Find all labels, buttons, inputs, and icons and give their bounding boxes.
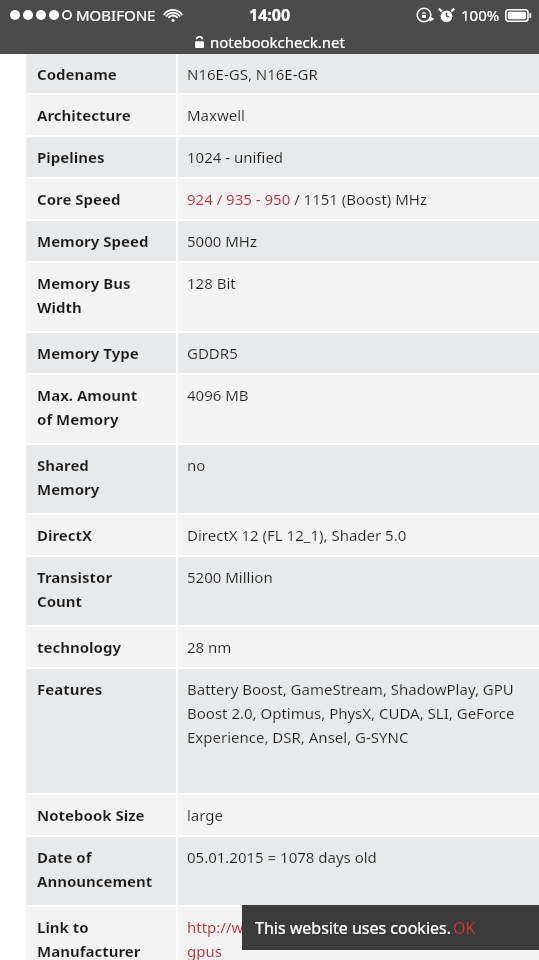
staticText: Maxwell — [187, 105, 245, 125]
staticText: Date of Announcement — [37, 847, 153, 891]
staticText: Memory Speed — [37, 231, 149, 251]
staticText: technology — [37, 637, 121, 657]
staticText: notebookcheck.net — [210, 32, 345, 52]
staticText: 5000 MHz — [187, 231, 257, 251]
staticText: no — [187, 455, 206, 475]
staticText: DirectX 12 (FL 12_1), Shader 5.0 — [187, 525, 407, 545]
staticText: N16E-GS, N16E-GR — [187, 64, 318, 84]
staticText: Architecture — [37, 105, 131, 125]
button[interactable]: Memory Speed — [26, 221, 539, 261]
staticText: Max. Amount of Memory — [37, 385, 138, 429]
staticText: MOBIFONE — [76, 5, 156, 25]
staticText: DirectX — [37, 525, 93, 545]
button[interactable]: Pipelines — [26, 137, 539, 177]
staticText: Transistor Count — [37, 567, 113, 611]
button[interactable]: Features — [26, 669, 539, 793]
button[interactable]: Architecture — [26, 95, 539, 135]
button[interactable]: Transistor Count — [26, 557, 539, 625]
staticText: Battery Boost, GameStream, ShadowPlay, G… — [187, 679, 537, 747]
staticText: OK — [453, 917, 476, 939]
staticText: Shared Memory — [37, 455, 100, 499]
button[interactable]: technology — [26, 627, 539, 667]
button[interactable]: Link to Manufacturer — [26, 907, 539, 960]
button[interactable]: Shared Memory — [26, 445, 539, 513]
staticText: Notebook Size — [37, 805, 145, 825]
staticText: Pipelines — [37, 147, 105, 167]
button[interactable]: Notebook Size — [26, 795, 539, 835]
button[interactable]: Memory Type — [26, 333, 539, 373]
staticText: 4096 MB — [187, 385, 249, 405]
staticText: This website uses cookies. — [255, 917, 452, 939]
other: Rotation lock — [417, 7, 433, 23]
staticText: 924 / 935 - 950 / 1151 (Boost) MHz — [187, 189, 428, 209]
staticText: 1024 - unified — [187, 147, 284, 167]
button[interactable]: Codename — [26, 54, 539, 93]
other: Alarm — [439, 8, 454, 23]
staticText: 100% — [461, 5, 500, 25]
staticText: 28 nm — [187, 637, 232, 657]
button[interactable]: Core Speed — [26, 179, 539, 219]
button[interactable]: Date of Announcement — [26, 837, 539, 905]
button[interactable]: Memory Bus Width — [26, 263, 539, 331]
staticText: GDDR5 — [187, 343, 238, 363]
staticText: Features — [37, 679, 103, 699]
staticText: 14:00 — [249, 4, 291, 26]
button[interactable]: This website uses cookies. — [242, 905, 539, 950]
staticText: Core Speed — [37, 189, 121, 209]
staticText: 128 Bit — [187, 273, 236, 293]
staticText: Memory Bus Width — [37, 273, 131, 317]
button[interactable]: DirectX — [26, 515, 539, 555]
staticText: 05.01.2015 = 1078 days old — [187, 847, 377, 867]
staticText: http://www.geforce.com/hardware/notebook… — [187, 917, 537, 960]
staticText: Memory Type — [37, 343, 139, 363]
other: Battery full — [505, 9, 532, 22]
staticText: large — [187, 805, 224, 825]
staticText: Link to Manufacturer — [37, 917, 141, 960]
button[interactable]: Max. Amount of Memory — [26, 375, 539, 443]
staticText: 5200 Million — [187, 567, 273, 587]
staticText: Codename — [37, 64, 117, 84]
button[interactable]: OK — [452, 917, 476, 939]
button[interactable]: notebookcheck.net — [0, 29, 539, 54]
